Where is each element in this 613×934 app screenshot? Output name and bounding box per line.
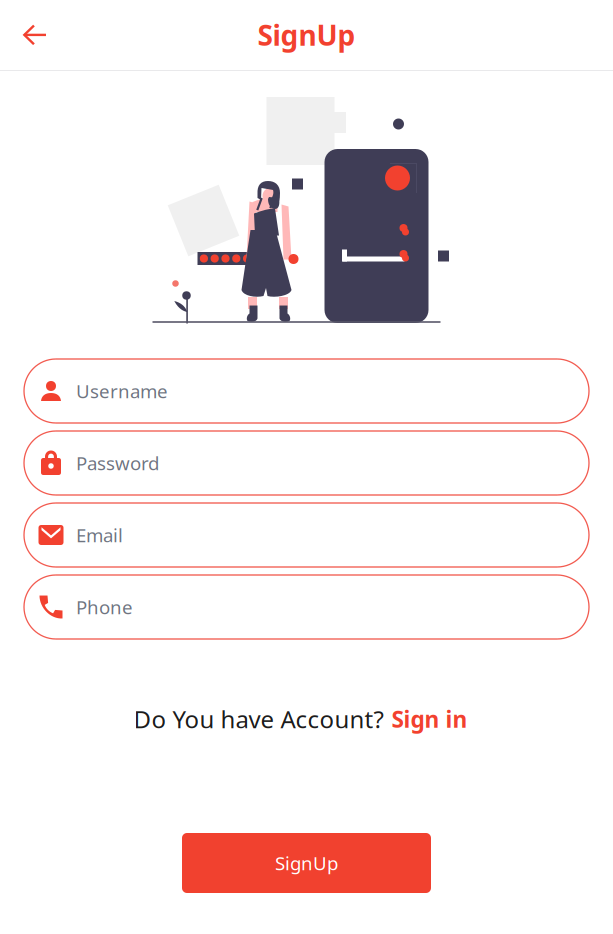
button[interactable]: Email (24, 503, 589, 567)
staticText: Sign in (391, 704, 467, 734)
staticText: Email (76, 523, 123, 547)
staticText: Username (76, 379, 168, 403)
button[interactable]: Phone (24, 575, 589, 639)
staticText: SignUp (257, 16, 355, 54)
staticText: Phone (76, 595, 133, 619)
button[interactable]: SignUp (182, 833, 431, 893)
staticText: Password (76, 451, 159, 475)
staticText: Do You have Account? (133, 703, 383, 735)
button[interactable]: Sign in (391, 704, 467, 734)
button[interactable]: Back (0, 9, 62, 60)
button[interactable]: Password (24, 431, 589, 495)
staticText: SignUp (275, 851, 338, 875)
button[interactable]: Username (24, 359, 589, 423)
